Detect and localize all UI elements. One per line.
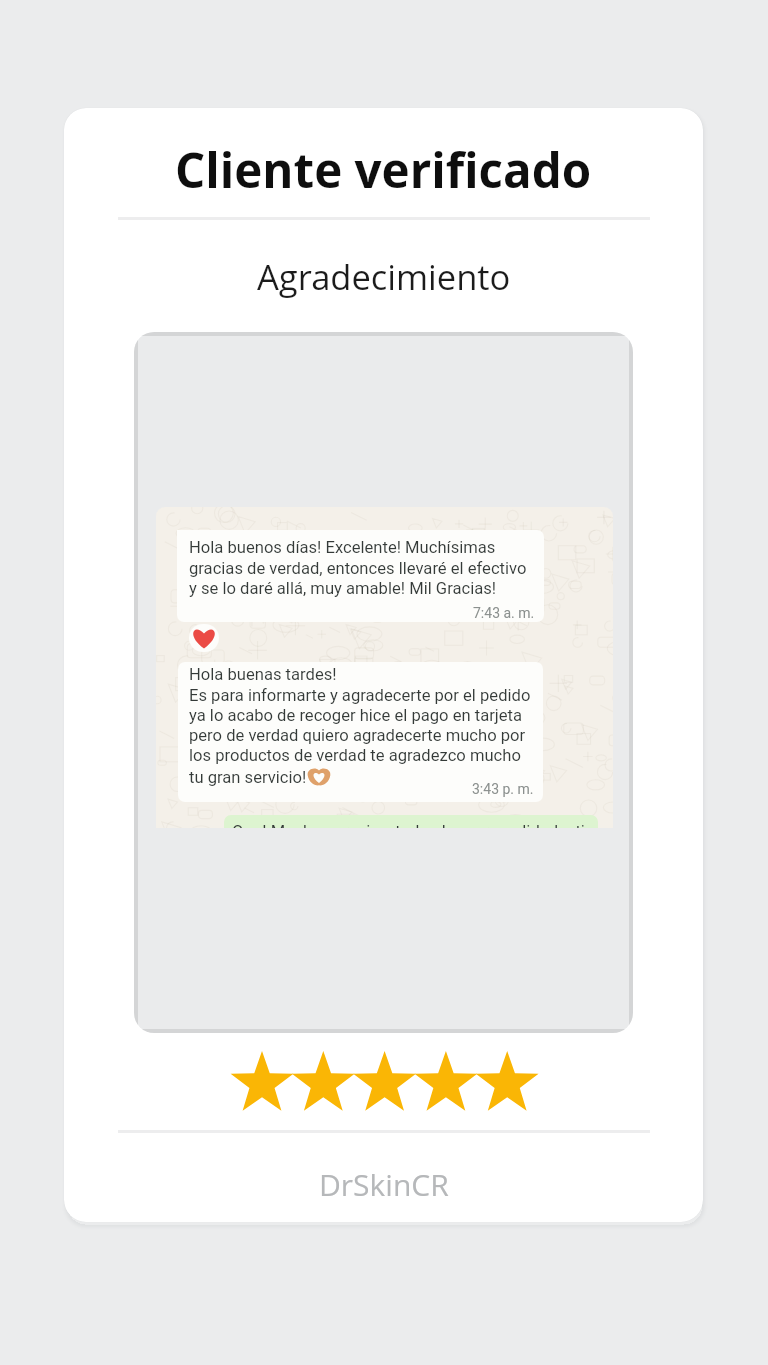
staticText: DrSkinCR (319, 1164, 449, 1205)
staticText: 7:43 a. m. (473, 605, 535, 621)
staticText: Agradecimiento (257, 253, 511, 300)
staticText: 3:43 p. m. (472, 781, 534, 797)
button[interactable]: Calificacion 5 de 5 estrellas (227, 1052, 541, 1116)
staticText: Ooo! Muchas gracias, todo el amor y cali… (232, 822, 585, 828)
staticText: Cliente verificado (175, 137, 592, 202)
staticText: tu gran servicio! (189, 768, 307, 787)
button[interactable]: Ver captura de pantalla del cliente (134, 332, 633, 1033)
staticText: Hola buenos días! Excelente! Muchísimas … (189, 538, 527, 598)
staticText: Hola buenas tardes! Es para informarte y… (189, 665, 531, 765)
button[interactable]: Cliente verificado (64, 108, 703, 1222)
